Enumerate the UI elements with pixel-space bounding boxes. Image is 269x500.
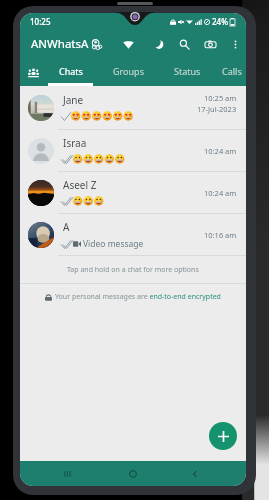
button[interactable]: Aseel Z	[20, 172, 246, 213]
button[interactable]: Network	[117, 30, 139, 58]
staticText: Israa	[63, 136, 87, 150]
staticText: 10:25	[30, 16, 51, 27]
staticText: 24%	[212, 16, 228, 27]
staticText: Calls	[222, 65, 242, 77]
staticText: 10:24 am	[204, 146, 237, 156]
button[interactable]: New chat	[209, 422, 237, 450]
staticText: Your personal messages are end-to-end en…	[55, 292, 221, 302]
button[interactable]: Status updates	[85, 30, 107, 58]
button[interactable]: A	[20, 214, 246, 255]
button[interactable]: Recents	[55, 461, 79, 486]
button[interactable]: Night mode	[147, 30, 169, 58]
staticText: ANWhatsApp	[31, 36, 89, 52]
staticText: Status	[174, 65, 201, 77]
button[interactable]: Back	[183, 461, 207, 486]
button[interactable]: Israa	[20, 130, 246, 171]
staticText: 17-Jul-2023	[197, 104, 237, 114]
staticText: 10:24 am	[204, 188, 237, 198]
staticText: 10:25 am	[204, 93, 237, 103]
staticText: Groups	[113, 65, 144, 77]
button[interactable]: More options	[224, 30, 246, 58]
button[interactable]: Calls	[211, 58, 246, 86]
button[interactable]: Home	[121, 461, 145, 486]
staticText: Video message	[83, 238, 144, 250]
button[interactable]: Chats	[48, 58, 93, 86]
button[interactable]: Jane	[20, 86, 246, 129]
staticText: Tap and hold on a chat for more options	[67, 265, 199, 275]
button[interactable]: Camera	[199, 30, 221, 58]
staticText: Chats	[59, 65, 83, 77]
staticText: 10:16 am	[204, 230, 237, 240]
button[interactable]: Search	[173, 30, 195, 58]
staticText: A	[63, 220, 70, 234]
staticText: Jane	[63, 93, 84, 107]
button[interactable]: Status	[165, 58, 209, 86]
button[interactable]: Groups	[106, 58, 151, 86]
staticText: Aseel Z	[63, 178, 97, 192]
button[interactable]: Communities	[22, 58, 44, 86]
